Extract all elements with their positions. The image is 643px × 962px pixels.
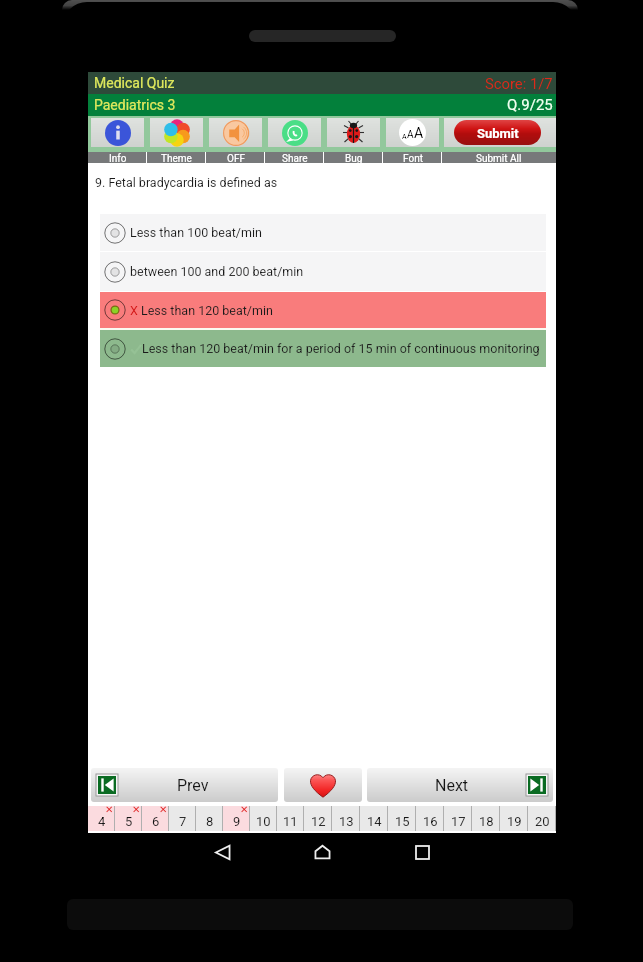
button[interactable]: 4 — [88, 806, 115, 831]
button[interactable]: 13 — [332, 806, 360, 831]
button[interactable]: Share — [268, 118, 321, 147]
staticText: 6 — [152, 814, 160, 829]
staticText: Bug — [345, 153, 363, 164]
staticText: ✕ — [105, 804, 114, 816]
button[interactable]: 17 — [444, 806, 472, 831]
staticText: ✕ — [240, 804, 249, 816]
staticText: 5 — [125, 814, 133, 829]
staticText: OFF — [227, 153, 245, 164]
button[interactable]: Less than 100 beat/min — [100, 214, 546, 251]
staticText: X — [130, 303, 138, 318]
button[interactable]: Recents — [399, 838, 445, 866]
staticText: Share — [282, 153, 308, 164]
button[interactable]: Next — [367, 768, 553, 802]
staticText: 8 — [206, 814, 214, 829]
staticText: A — [407, 129, 414, 141]
button[interactable]: Favourite — [284, 768, 362, 802]
staticText: Submit All — [476, 153, 522, 164]
button[interactable]: Info — [91, 118, 144, 147]
button[interactable]: 20 — [528, 806, 556, 831]
staticText: 4 — [98, 814, 106, 829]
button[interactable]: X — [100, 292, 546, 328]
staticText: A — [414, 125, 424, 141]
staticText: between 100 and 200 beat/min — [130, 264, 304, 279]
staticText: 19 — [507, 814, 522, 829]
button[interactable]: between 100 and 200 beat/min — [100, 252, 546, 291]
button[interactable]: 14 — [360, 806, 388, 831]
button[interactable]: 8 — [196, 806, 223, 831]
staticText: Less than 120 beat/min for a period of 1… — [142, 341, 540, 356]
button[interactable]: 7 — [169, 806, 196, 831]
staticText: 18 — [479, 814, 494, 829]
staticText: Font — [403, 153, 423, 164]
button[interactable]: 15 — [388, 806, 416, 831]
staticText: Theme — [161, 153, 192, 164]
button[interactable]: 19 — [500, 806, 528, 831]
staticText: 20 — [535, 814, 550, 829]
staticText: 15 — [395, 814, 410, 829]
staticText: Paediatrics 3 — [94, 97, 176, 113]
button[interactable]: 9 — [223, 806, 250, 831]
button[interactable]: Font size — [386, 118, 439, 147]
button[interactable]: Prev — [91, 768, 278, 802]
staticText: 7 — [179, 814, 187, 829]
staticText: Q.9/25 — [507, 96, 553, 114]
staticText: Less than 120 beat/min — [141, 303, 273, 318]
button[interactable]: 12 — [304, 806, 332, 831]
staticText: 9. Fetal bradycardia is defined as — [95, 175, 278, 190]
button[interactable]: Bug report — [327, 118, 380, 147]
button[interactable]: 11 — [277, 806, 304, 831]
staticText: A — [402, 133, 407, 141]
staticText: Submit — [477, 126, 519, 141]
staticText: Next — [435, 776, 469, 795]
button[interactable]: Submit — [444, 118, 556, 147]
staticText: ✕ — [159, 804, 168, 816]
staticText: Score: 1/7 — [485, 75, 553, 92]
staticText: Prev — [177, 776, 209, 795]
button[interactable]: Home — [299, 838, 345, 866]
staticText: 12 — [311, 814, 326, 829]
button[interactable]: Sound off — [209, 118, 262, 147]
staticText: ✕ — [132, 804, 141, 816]
button[interactable]: 10 — [250, 806, 277, 831]
staticText: Less than 100 beat/min — [130, 225, 262, 240]
button[interactable]: 16 — [416, 806, 444, 831]
staticText: 14 — [367, 814, 382, 829]
staticText: 16 — [423, 814, 438, 829]
staticText: 13 — [339, 814, 354, 829]
button[interactable]: 6 — [142, 806, 169, 831]
staticText: 10 — [256, 814, 271, 829]
staticText: 17 — [451, 814, 466, 829]
button[interactable]: Theme — [150, 118, 203, 147]
button[interactable]: Less than 120 beat/min for a period of 1… — [100, 330, 546, 367]
staticText: Info — [109, 153, 127, 164]
button[interactable]: Back — [199, 838, 245, 866]
staticText: Medical Quiz — [94, 75, 175, 91]
staticText: 9 — [233, 814, 241, 829]
button[interactable]: 18 — [472, 806, 500, 831]
staticText: 11 — [283, 814, 298, 829]
button[interactable]: 5 — [115, 806, 142, 831]
